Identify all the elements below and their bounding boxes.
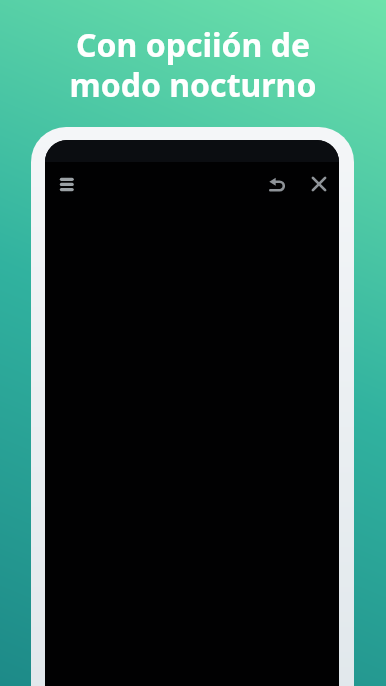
button[interactable] [56, 173, 78, 195]
staticText: Con opciión de modo nocturno [0, 23, 386, 107]
button[interactable] [308, 173, 330, 195]
button[interactable] [266, 173, 288, 195]
